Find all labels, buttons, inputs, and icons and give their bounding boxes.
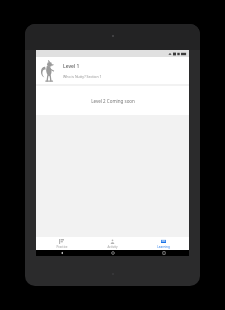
button[interactable]: Learning (138, 237, 189, 250)
staticText: Level 1 (63, 63, 80, 70)
button[interactable]: Level 1 (36, 57, 189, 84)
button[interactable]: Activity (87, 237, 138, 250)
staticText: Level 2 Coming soon (91, 98, 135, 104)
button[interactable]: Back (36, 250, 87, 256)
button[interactable]: Home (87, 250, 138, 256)
button[interactable]: Level 2 Coming soon (36, 86, 189, 115)
staticText: Learning (157, 245, 170, 249)
staticText: Who is Nutty? Section 1 (63, 74, 102, 79)
staticText: Activity (107, 245, 118, 249)
button[interactable]: Recents (138, 250, 189, 256)
staticText: Practice (56, 245, 68, 249)
button[interactable]: Practice (36, 237, 87, 250)
